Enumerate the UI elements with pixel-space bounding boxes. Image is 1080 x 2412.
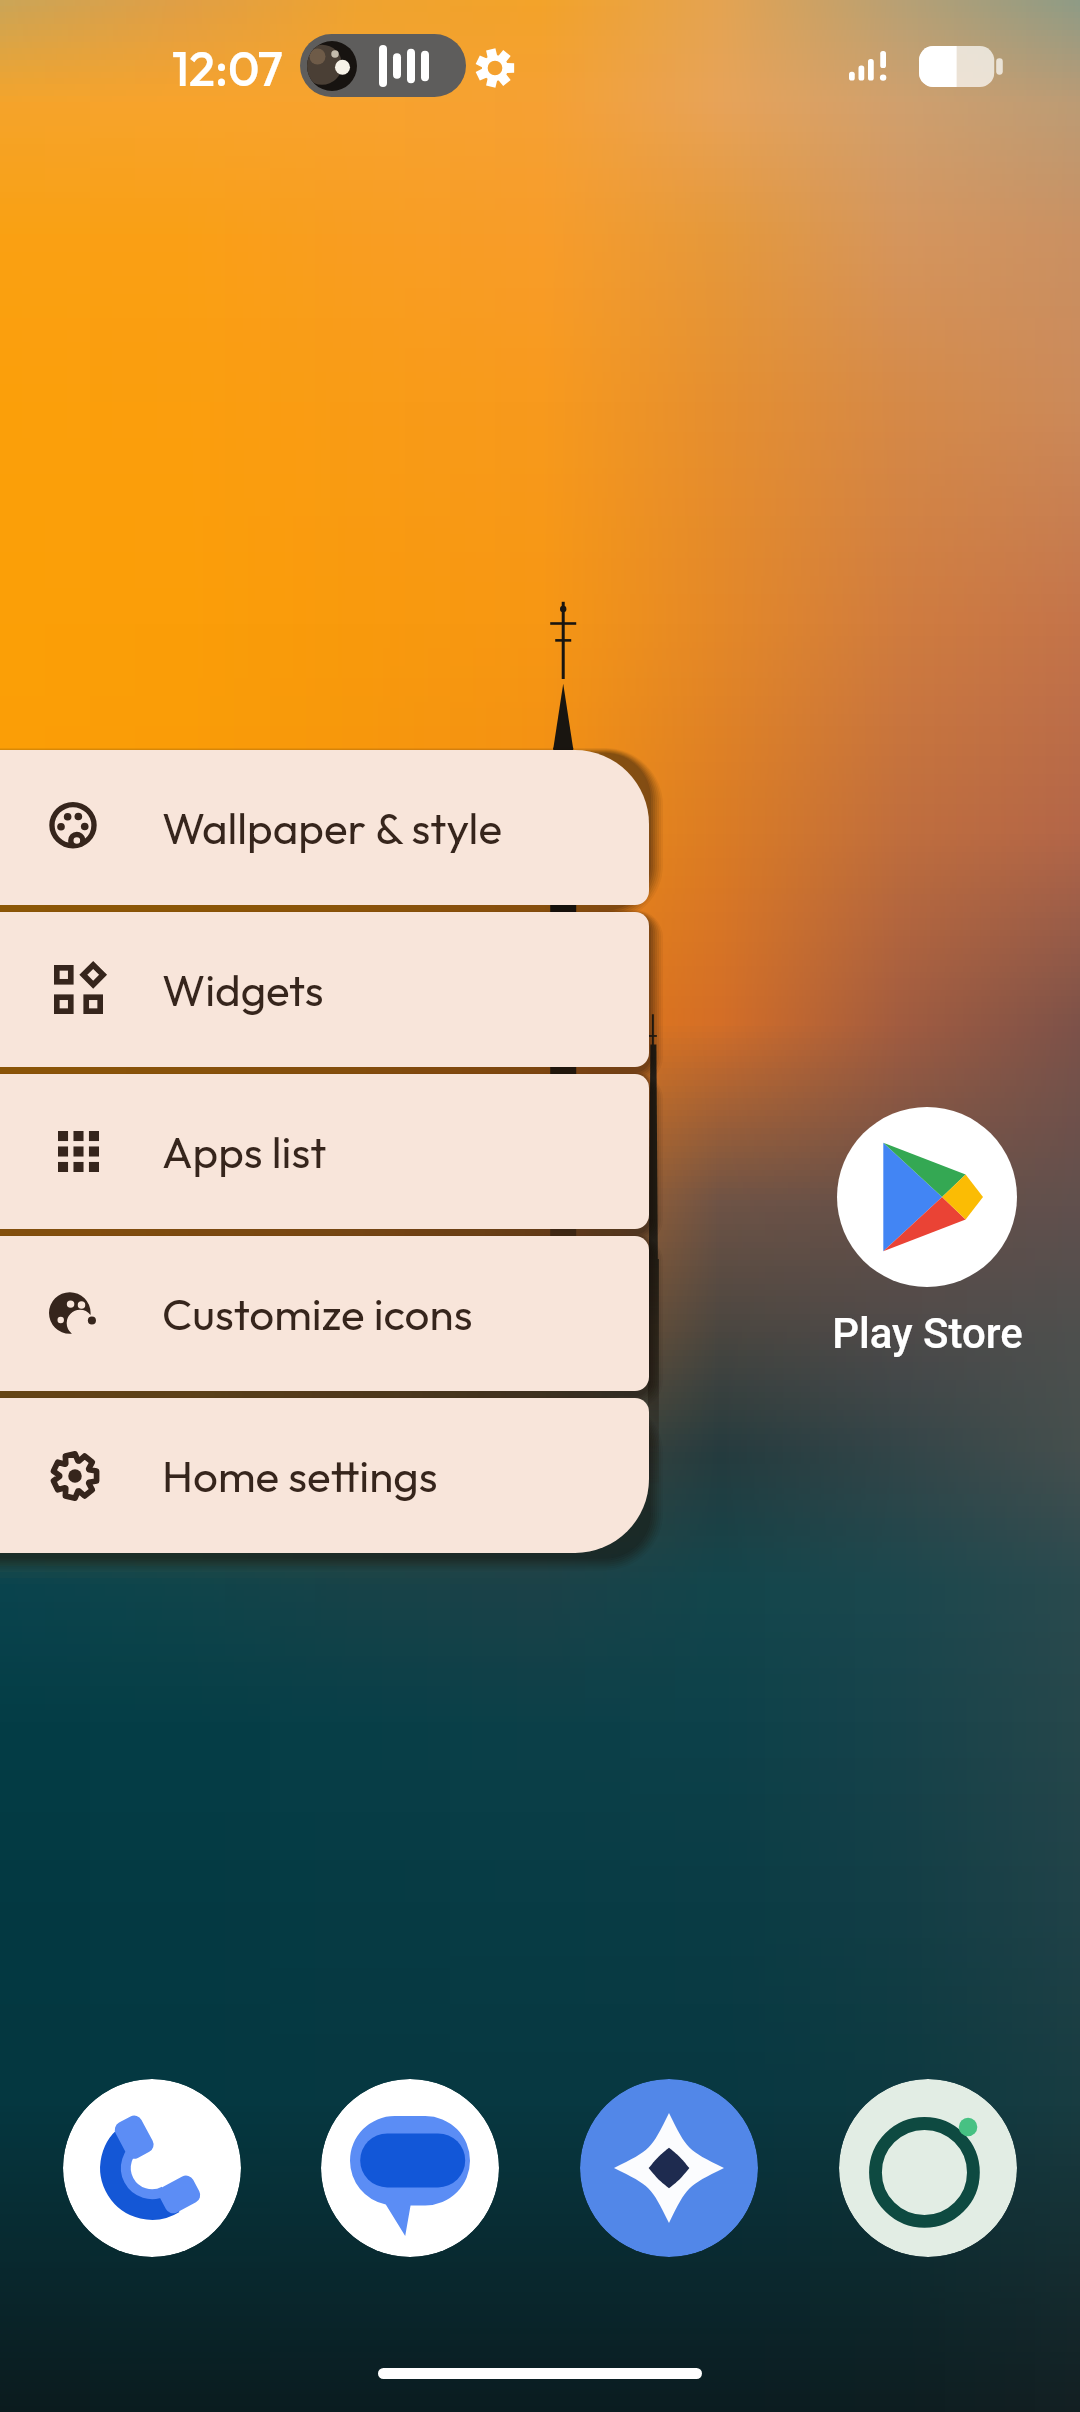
button[interactable]: Home settings bbox=[0, 1398, 649, 1553]
button[interactable]: Wallpaper & style bbox=[0, 750, 649, 905]
staticText: 12:07 bbox=[172, 38, 283, 98]
staticText: Apps list bbox=[162, 1124, 327, 1179]
staticText: Wallpaper & style bbox=[162, 800, 502, 855]
staticText: Customize icons bbox=[162, 1286, 473, 1341]
button[interactable]: Settings bbox=[471, 44, 519, 92]
button[interactable]: Phone bbox=[63, 2079, 241, 2257]
button[interactable]: Gemini bbox=[580, 2079, 758, 2257]
button[interactable]: Messages bbox=[321, 2079, 499, 2257]
button[interactable]: Apps list bbox=[0, 1074, 649, 1229]
button[interactable]: Widgets bbox=[0, 912, 649, 1067]
staticText: Widgets bbox=[162, 962, 324, 1017]
button[interactable]: Now playing bbox=[300, 34, 466, 97]
button[interactable]: Fitbit bbox=[839, 2079, 1017, 2257]
staticText: Play Store bbox=[832, 1309, 1023, 1358]
button[interactable]: Play Store bbox=[807, 1107, 1047, 1358]
staticText: Home settings bbox=[162, 1448, 438, 1503]
button[interactable]: Customize icons bbox=[0, 1236, 649, 1391]
